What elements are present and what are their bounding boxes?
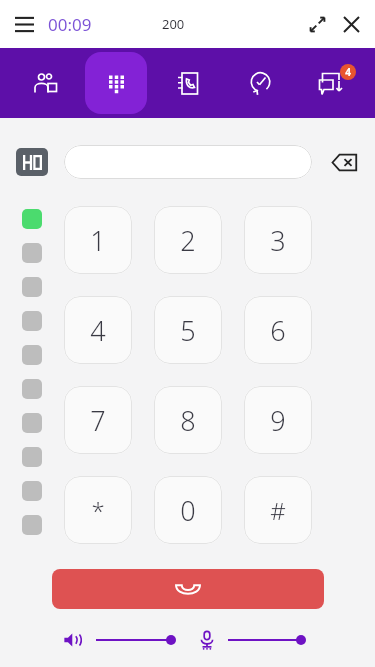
- staticText: 1: [90, 222, 106, 259]
- button[interactable]: 2: [154, 206, 222, 274]
- button[interactable]: Backspace: [326, 144, 362, 180]
- button[interactable]: Minimize: [301, 8, 333, 40]
- button[interactable]: Call history: [228, 52, 290, 114]
- button[interactable]: Line 9: [22, 481, 42, 501]
- button[interactable]: Level slider: [228, 630, 306, 650]
- button[interactable]: 3: [244, 206, 312, 274]
- button[interactable]: Line 6: [22, 379, 42, 399]
- button[interactable]: Line 8: [22, 447, 42, 467]
- button[interactable]: Phonebook: [157, 52, 219, 114]
- button[interactable]: Messages: [300, 52, 362, 114]
- staticText: 7: [90, 402, 106, 439]
- button[interactable]: Conference: [14, 52, 76, 114]
- button[interactable]: 4: [64, 296, 132, 364]
- button[interactable]: Hang up: [52, 569, 324, 609]
- button[interactable]: 6: [244, 296, 312, 364]
- staticText: 9: [270, 402, 286, 439]
- button[interactable]: Speaker volume: [62, 629, 84, 651]
- button[interactable]: Line 5: [22, 345, 42, 365]
- button[interactable]: Line 7: [22, 413, 42, 433]
- button[interactable]: Menu: [6, 6, 42, 42]
- staticText: 00:09: [48, 13, 92, 36]
- button[interactable]: Level slider: [96, 630, 176, 650]
- button[interactable]: 0: [154, 476, 222, 544]
- button[interactable]: Close: [335, 8, 367, 40]
- staticText: 4: [90, 312, 106, 349]
- staticText: 2: [180, 222, 196, 259]
- staticText: 0: [180, 492, 196, 529]
- button[interactable]: Line 10: [22, 515, 42, 535]
- button[interactable]: Line 1: [22, 209, 42, 229]
- button[interactable]: HD voice: [16, 148, 48, 176]
- button[interactable]: Dialpad: [85, 52, 147, 114]
- button[interactable]: *: [64, 476, 132, 544]
- staticText: *: [91, 494, 105, 527]
- button[interactable]: 9: [244, 386, 312, 454]
- staticText: #: [270, 494, 286, 527]
- staticText: 200: [162, 15, 185, 33]
- staticText: 3: [270, 222, 286, 259]
- button[interactable]: 1: [64, 206, 132, 274]
- button[interactable]: Phone number field: [64, 145, 312, 179]
- staticText: 8: [180, 402, 196, 439]
- button[interactable]: 5: [154, 296, 222, 364]
- staticText: 6: [270, 312, 286, 349]
- staticText: 4: [345, 65, 351, 79]
- button[interactable]: Microphone level: [196, 629, 218, 651]
- button[interactable]: 8: [154, 386, 222, 454]
- button[interactable]: 7: [64, 386, 132, 454]
- button[interactable]: Line 3: [22, 277, 42, 297]
- staticText: 5: [180, 312, 196, 349]
- button[interactable]: Line 2: [22, 243, 42, 263]
- button[interactable]: Line 4: [22, 311, 42, 331]
- button[interactable]: #: [244, 476, 312, 544]
